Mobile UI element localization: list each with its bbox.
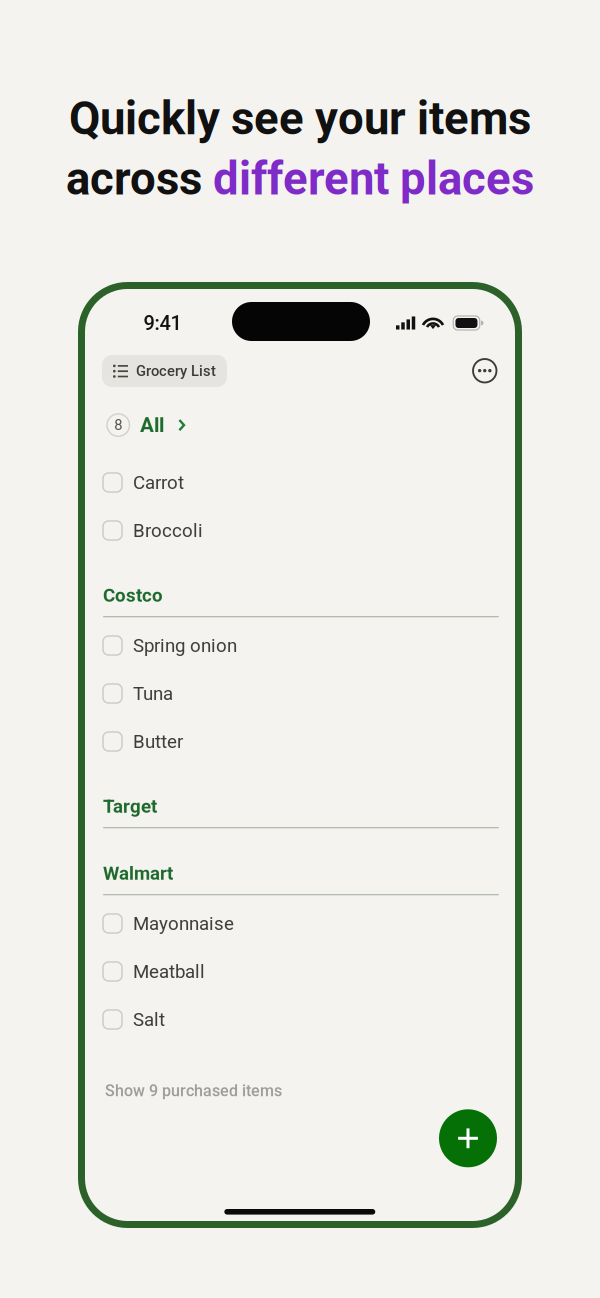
staticText: Walmart [103,862,173,884]
button[interactable]: Show 9 purchased items [103,1081,280,1100]
staticText: Butter [133,731,183,752]
button[interactable]: Tuna [103,669,499,717]
staticText: Target [103,795,157,817]
staticText: Costco [103,584,163,606]
staticText: 9:41 [143,311,181,335]
button[interactable]: More options [473,359,496,382]
button[interactable]: Spring onion [103,621,499,669]
staticText: Salt [133,1009,165,1030]
button[interactable]: Grocery List [102,355,227,387]
staticText: All [140,413,164,437]
button[interactable]: 8 [107,413,185,437]
staticText: Grocery List [136,362,216,380]
staticText: Mayonnaise [133,913,234,934]
staticText: Tuna [133,683,173,704]
staticText: different places [213,152,534,206]
button[interactable]: Butter [103,717,499,765]
staticText: Spring onion [133,635,237,656]
staticText: Meatball [133,961,205,982]
staticText: Broccoli [133,520,203,541]
button[interactable]: Add item [439,1109,497,1167]
button[interactable]: Meatball [103,947,499,995]
button[interactable]: Broccoli [103,506,499,554]
staticText: Quickly see your items [69,92,531,145]
button[interactable]: Mayonnaise [103,899,499,947]
staticText: 8 [114,416,122,434]
staticText: across [66,152,213,206]
button[interactable]: Salt [103,995,499,1043]
staticText: Carrot [133,472,184,493]
staticText: Show 9 purchased items [105,1081,282,1100]
button[interactable]: Carrot [103,458,499,506]
